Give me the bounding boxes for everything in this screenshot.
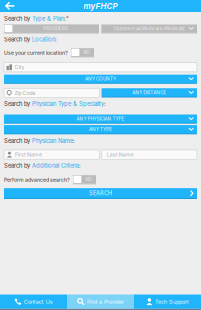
button[interactable]: PROVIDERS bbox=[4, 24, 99, 34]
staticText: ANY COUNTY bbox=[85, 76, 116, 82]
staticText: Contact Us bbox=[24, 298, 53, 305]
button[interactable]: Tech Support bbox=[134, 294, 201, 309]
staticText: City bbox=[14, 64, 24, 70]
staticText: Last Name bbox=[107, 151, 134, 158]
staticText: : bbox=[64, 15, 66, 22]
button[interactable]: ANY COUNTY bbox=[4, 75, 197, 84]
staticText: Physician Name bbox=[32, 137, 73, 144]
staticText: SEARCH bbox=[89, 190, 112, 197]
button[interactable]: ANY PHYSICIAN TYPE bbox=[4, 115, 197, 124]
staticText: : bbox=[104, 100, 106, 107]
button[interactable]: Back bbox=[0, 0, 22, 12]
staticText: Physician Type & Speciality bbox=[32, 100, 104, 107]
staticText: Use your current location? bbox=[4, 50, 68, 56]
button[interactable]: Commercial/Medicare/Medicaid bbox=[101, 24, 197, 33]
staticText: Search by bbox=[4, 162, 32, 169]
staticText: myFHCP bbox=[83, 1, 117, 11]
staticText: Search by bbox=[4, 100, 32, 107]
staticText: PROVIDERS bbox=[43, 26, 68, 31]
staticText: NO bbox=[83, 50, 89, 55]
staticText: Commercial/Medicare/Medicaid bbox=[114, 26, 185, 31]
staticText: Search by bbox=[4, 15, 32, 22]
staticText: NO bbox=[85, 177, 91, 182]
staticText: Tech Support bbox=[155, 298, 189, 305]
staticText: Search by bbox=[4, 36, 32, 43]
staticText: : bbox=[55, 36, 57, 43]
staticText: ANY DISTANCE bbox=[132, 90, 166, 95]
staticText: * bbox=[66, 15, 69, 22]
staticText: Zip Code bbox=[14, 90, 35, 96]
button[interactable]: ANY TYPE bbox=[4, 125, 197, 134]
staticText: First Name bbox=[15, 151, 42, 158]
staticText: Perform advanced search? bbox=[4, 177, 70, 183]
staticText: Find a Provider bbox=[87, 298, 124, 305]
button[interactable]: ANY DISTANCE bbox=[102, 88, 197, 97]
staticText: : bbox=[79, 162, 81, 169]
button[interactable]: Off bbox=[73, 175, 96, 184]
staticText: Additional Criteria bbox=[32, 162, 79, 169]
button[interactable]: Find a Provider bbox=[67, 294, 134, 309]
staticText: ANY PHYSICIAN TYPE bbox=[76, 116, 124, 121]
staticText: Type & Plan bbox=[32, 15, 64, 22]
staticText: Location bbox=[32, 36, 55, 43]
staticText: : bbox=[73, 137, 75, 144]
button[interactable]: Contact Us bbox=[0, 294, 67, 309]
staticText: ANY TYPE bbox=[89, 126, 112, 132]
button[interactable]: Off bbox=[71, 48, 94, 57]
button[interactable]: SEARCH bbox=[4, 188, 197, 199]
staticText: Search by bbox=[4, 137, 32, 144]
